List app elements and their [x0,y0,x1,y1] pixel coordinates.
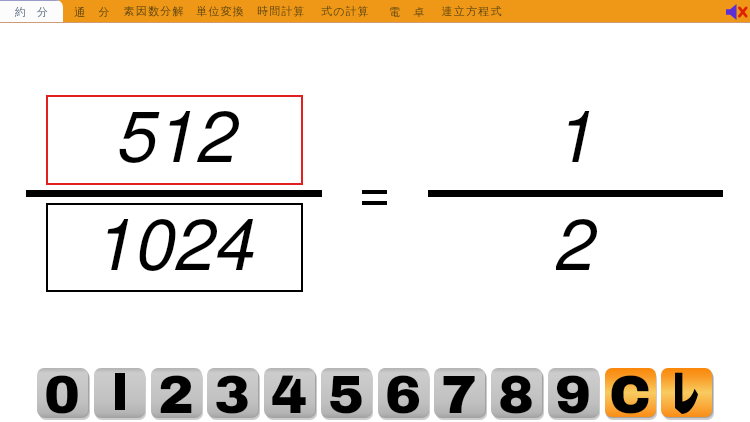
staticText: 512 [118,81,239,169]
staticText: 式の計算 [321,4,371,18]
button[interactable]: Mute sound [726,4,747,20]
staticText: 3 [214,368,251,415]
staticText: 1024 [96,189,257,276]
button[interactable]: 4 [264,368,315,417]
staticText: 1 [557,81,598,169]
button[interactable]: 3 [207,368,258,417]
staticText: 8 [498,368,535,415]
staticText: 時間計算 [257,4,306,18]
staticText: 7 [441,368,478,415]
staticText: 約 分 [15,4,48,19]
button[interactable]: 5 [321,368,372,417]
staticText: 6 [385,368,422,415]
button[interactable]: 時間計算 [251,0,312,22]
staticText: 2 [556,189,597,276]
button[interactable]: 素因数分解 [117,0,190,22]
button[interactable]: 9 [548,368,599,417]
staticText: 2 [158,368,195,415]
staticText: 0 [44,368,81,415]
button[interactable]: 6 [378,368,429,417]
button[interactable]: 8 [491,368,542,417]
staticText: 連立方程式 [441,4,502,18]
staticText: 通 分 [74,4,111,19]
staticText: C [609,368,652,415]
staticText: 単位変換 [196,4,245,18]
button[interactable]: 0 [37,368,88,417]
staticText: 4 [271,368,308,415]
button[interactable]: 電 卓 [380,0,435,22]
button[interactable]: C [605,368,656,417]
button[interactable]: 単位変換 [190,0,251,22]
staticText: 電 卓 [389,4,426,19]
staticText: 5 [328,368,365,415]
button[interactable]: 通 分 [68,0,117,22]
staticText: 9 [555,368,592,415]
button[interactable] [94,368,145,417]
button[interactable]: 7 [434,368,485,417]
button[interactable]: 式の計算 [312,0,380,22]
button[interactable]: 約 分 [0,0,63,22]
staticText: 素因数分解 [123,4,184,18]
button[interactable]: 連立方程式 [435,0,508,22]
button[interactable]: 2 [151,368,202,417]
button[interactable] [661,368,712,417]
